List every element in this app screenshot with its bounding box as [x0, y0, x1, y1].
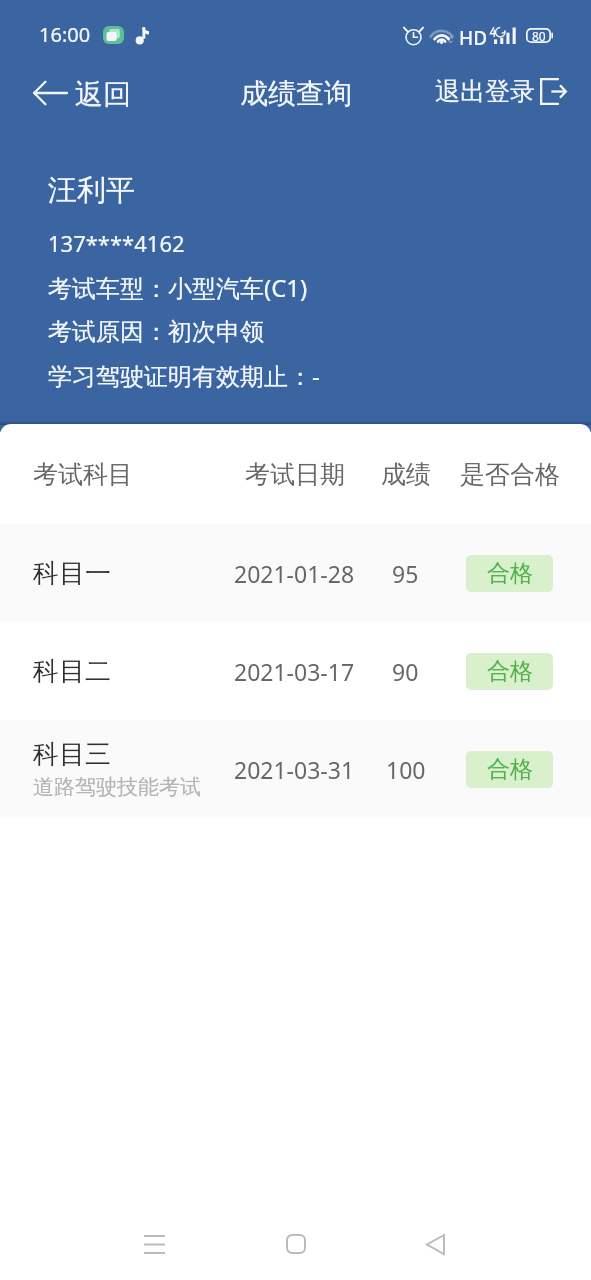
- button[interactable]: 退出登录 Log out: [424, 69, 579, 115]
- staticText: 学习驾驶证明有效期止：-: [48, 359, 320, 392]
- staticText: 2021-03-17: [234, 656, 355, 687]
- staticText: 考试日期: [245, 459, 345, 490]
- button[interactable]: 科目一: [0, 524, 591, 622]
- staticText: 2021-01-28: [234, 558, 355, 589]
- staticText: 90: [392, 656, 419, 687]
- staticText: 2021-03-31: [234, 754, 355, 785]
- staticText: 合格: [487, 657, 533, 686]
- staticText: 成绩查询: [240, 76, 352, 111]
- staticText: 合格: [487, 559, 533, 588]
- staticText: HD: [459, 25, 488, 51]
- button[interactable]: 科目二: [0, 622, 591, 720]
- staticText: 100: [386, 754, 426, 785]
- staticText: 退出登录: [435, 76, 535, 107]
- staticText: 成绩: [381, 459, 431, 490]
- staticText: 95: [392, 558, 419, 589]
- button[interactable]: Recent apps: [126, 1216, 182, 1272]
- staticText: 考试车型：小型汽车(C1): [48, 271, 308, 304]
- staticText: 是否合格: [460, 459, 560, 490]
- staticText: 137****4162: [48, 228, 185, 258]
- staticText: 考试科目: [33, 459, 133, 490]
- staticText: 科目二: [33, 655, 111, 688]
- button[interactable]: 科目三: [0, 720, 591, 818]
- staticText: 科目三: [33, 738, 111, 771]
- staticText: 科目一: [33, 557, 111, 590]
- button[interactable]: Home: [268, 1216, 324, 1272]
- button[interactable]: 返回 Back: [22, 72, 142, 118]
- staticText: 道路驾驶技能考试: [33, 774, 201, 800]
- staticText: 返回: [75, 77, 131, 112]
- staticText: 合格: [487, 755, 533, 784]
- button[interactable]: Back: [407, 1216, 463, 1272]
- staticText: 考试原因：初次申领: [48, 317, 264, 347]
- staticText: 16:00: [39, 21, 91, 48]
- staticText: 80: [532, 28, 546, 43]
- staticText: 汪利平: [48, 172, 135, 209]
